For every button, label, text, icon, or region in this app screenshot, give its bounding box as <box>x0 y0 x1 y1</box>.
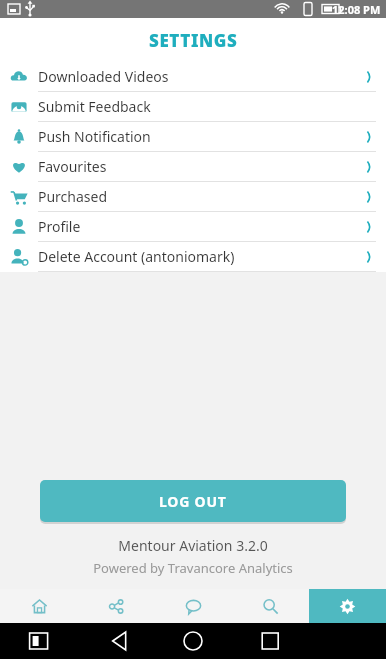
button[interactable]: Home <box>0 589 78 623</box>
button[interactable]: Chat <box>155 589 232 623</box>
staticText: 12:08 PM <box>332 2 381 17</box>
staticText: Powered by Travancore Analytics <box>0 559 386 577</box>
staticText: Push Notification <box>38 127 362 146</box>
button[interactable]: Submit Feedback <box>0 92 386 121</box>
staticText: Favourites <box>38 157 362 176</box>
button[interactable]: Delete Account (antoniomark) <box>0 242 386 271</box>
button[interactable]: Settings <box>309 589 386 623</box>
staticText: Profile <box>38 217 362 236</box>
staticText: Downloaded Videos <box>38 67 362 86</box>
button[interactable]: Share <box>78 589 155 623</box>
staticText: SETTINGS <box>149 29 238 52</box>
button[interactable]: Downloaded Videos <box>0 62 386 91</box>
button[interactable]: Search <box>232 589 309 623</box>
staticText: Submit Feedback <box>38 97 362 116</box>
staticText: Mentour Aviation 3.2.0 <box>0 536 386 555</box>
button[interactable]: Profile <box>0 212 386 241</box>
staticText: Purchased <box>38 187 362 206</box>
button[interactable]: Push Notification <box>0 122 386 151</box>
staticText: Delete Account (antoniomark) <box>38 247 362 266</box>
button[interactable]: LOG OUT <box>40 480 346 522</box>
button[interactable]: Favourites <box>0 152 386 181</box>
button[interactable]: Purchased <box>0 182 386 211</box>
staticText: LOG OUT <box>159 492 227 511</box>
